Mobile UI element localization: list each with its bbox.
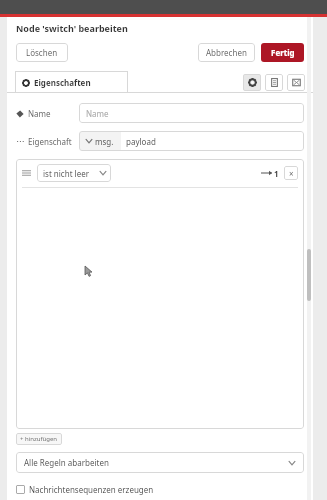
staticText: Alle Regeln abarbeiten [24, 457, 109, 468]
staticText: 1 [274, 168, 279, 179]
button[interactable]: Name [79, 103, 304, 123]
button[interactable]: Alle Regeln abarbeiten [16, 452, 304, 473]
staticText: Node 'switch' bearbeiten [16, 22, 128, 34]
staticText: Fertig [271, 47, 295, 58]
button[interactable]: msg. [79, 131, 304, 151]
staticText: Eigenschaften [34, 77, 91, 88]
staticText: Name [28, 108, 51, 119]
staticText: + hinzufügen [20, 435, 58, 443]
button[interactable]: Abbrechen [198, 43, 255, 62]
staticText: Eigenschaft [28, 136, 72, 147]
button[interactable]: Appearance [287, 74, 305, 91]
button[interactable]: Regel löschen [284, 166, 298, 180]
staticText: msg. [95, 136, 114, 147]
button[interactable]: Fertig [261, 43, 304, 62]
button[interactable]: + hinzufügen [16, 433, 62, 445]
button[interactable]: Description [265, 74, 283, 91]
button[interactable]: Eigenschaften [15, 71, 128, 93]
button[interactable]: Löschen [16, 43, 68, 62]
staticText: Nachrichtensequenzen erzeugen [29, 484, 154, 495]
staticText: ist nicht leer [43, 168, 90, 179]
staticText: Löschen [26, 47, 58, 58]
button[interactable]: Properties [243, 74, 261, 91]
button[interactable]: ist nicht leer [16, 159, 304, 187]
staticText: Name [86, 108, 109, 119]
button[interactable]: Nachrichtensequenzen erzeugen [16, 481, 154, 497]
button[interactable]: ist nicht leer [37, 164, 111, 182]
staticText: Abbrechen [206, 47, 247, 58]
staticText: × [289, 168, 294, 179]
staticText: payload [126, 136, 156, 147]
